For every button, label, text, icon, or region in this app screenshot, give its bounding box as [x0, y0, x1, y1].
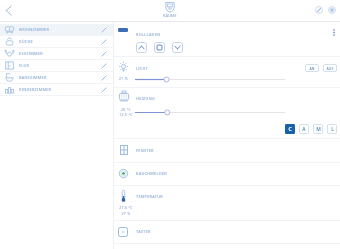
button[interactable]: Edit KÜCHE: [99, 37, 109, 47]
button[interactable]: TEMPERATUR: [114, 185, 340, 221]
staticText: WOHNZIMMER: [19, 27, 99, 32]
button[interactable]: Back: [3, 4, 16, 17]
staticText: HEIZUNG: [136, 96, 155, 101]
button[interactable]: RAUCHMELDER: [114, 162, 340, 185]
button[interactable]: More options: [330, 28, 338, 36]
button[interactable]: Up: [136, 42, 147, 53]
staticText: BADEZIMMER: [19, 75, 99, 80]
staticText: 12.5 °C: [115, 112, 137, 117]
staticText: KINDERZIMMER: [19, 87, 99, 92]
button[interactable]: TASTER: [114, 220, 340, 243]
staticText: RAUCHMELDER: [136, 171, 167, 176]
button[interactable]: L: [327, 124, 337, 134]
staticText: AN: [309, 66, 315, 71]
button[interactable]: Settings: [328, 6, 336, 14]
staticText: TASTER: [136, 229, 151, 234]
staticText: L: [331, 126, 334, 133]
button[interactable]: AUS: [323, 64, 337, 72]
button[interactable]: WOHNZIMMER: [0, 24, 113, 35]
button[interactable]: FENSTER: [114, 138, 340, 162]
button[interactable]: LICHT: [114, 56, 340, 87]
button[interactable]: FLUR: [0, 60, 113, 71]
staticText: TEMPERATUR: [136, 194, 163, 199]
button[interactable]: ESSZIMMER: [0, 48, 113, 59]
button[interactable]: BADEZIMMER: [0, 72, 113, 83]
staticText: ROLLLADEN: [136, 32, 161, 37]
button[interactable]: Edit KINDERZIMMER: [99, 85, 109, 95]
button[interactable]: Edit WOHNZIMMER: [99, 25, 109, 35]
staticText: KÜCHE: [19, 39, 99, 44]
button[interactable]: A: [299, 124, 309, 134]
staticText: LICHT: [136, 66, 149, 71]
button[interactable]: Edit FLUR: [99, 61, 109, 71]
button[interactable]: AN: [305, 64, 319, 72]
staticText: FENSTER: [136, 148, 154, 153]
button[interactable]: HEIZUNG: [114, 87, 340, 138]
button[interactable]: KÜCHE: [0, 36, 113, 47]
staticText: ESSZIMMER: [19, 51, 99, 56]
button[interactable]: ROLLLADEN: [114, 22, 340, 56]
staticText: 20 °C: [115, 107, 137, 112]
staticText: AUS: [326, 66, 334, 71]
button[interactable]: Stop: [154, 42, 165, 53]
staticText: 27 %: [115, 211, 137, 216]
button[interactable]: Down: [172, 42, 183, 53]
staticText: RÄUME: [160, 13, 180, 18]
button[interactable]: Edit BADEZIMMER: [99, 73, 109, 83]
button[interactable]: KINDERZIMMER: [0, 84, 113, 95]
button[interactable]: M: [313, 124, 323, 134]
staticText: FLUR: [19, 63, 99, 68]
staticText: 27.6 °C: [115, 205, 137, 210]
button[interactable]: Edit: [315, 6, 323, 14]
button[interactable]: Edit ESSZIMMER: [99, 49, 109, 59]
staticText: 21 %: [119, 76, 128, 81]
staticText: A: [302, 126, 306, 133]
staticText: M: [316, 126, 321, 133]
staticText: C: [288, 126, 292, 133]
button[interactable]: RÄUME: [160, 1, 180, 18]
button[interactable]: C: [285, 124, 295, 134]
